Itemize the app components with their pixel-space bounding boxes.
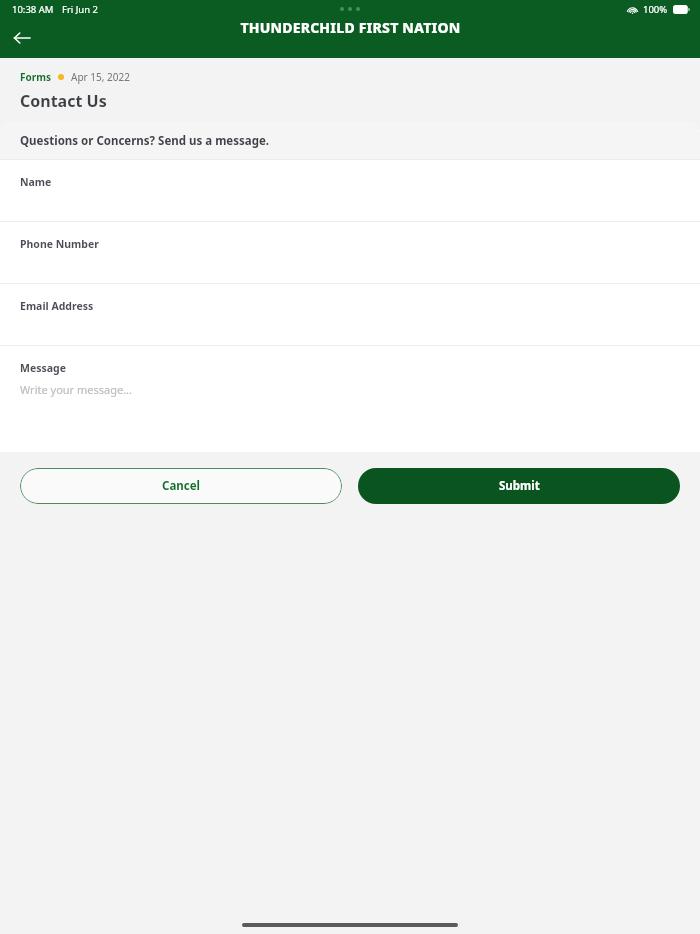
staticText: Forms bbox=[20, 70, 51, 84]
staticText: Email Address bbox=[20, 299, 94, 313]
staticText: 10:38 AM bbox=[12, 3, 54, 16]
button[interactable]: Submit bbox=[358, 468, 680, 504]
button[interactable]: Cancel bbox=[20, 468, 342, 504]
staticText: THUNDERCHILD FIRST NATION bbox=[240, 18, 461, 37]
staticText: 100% bbox=[643, 3, 668, 16]
staticText: Questions or Concerns? Send us a message… bbox=[20, 133, 270, 149]
button[interactable]: Name bbox=[0, 160, 700, 221]
staticText: Name bbox=[20, 175, 52, 189]
staticText: Fri Jun 2 bbox=[62, 3, 99, 16]
staticText: Contact Us bbox=[20, 90, 107, 112]
button[interactable]: Back bbox=[6, 22, 38, 54]
staticText: Apr 15, 2022 bbox=[71, 70, 130, 84]
staticText: Submit bbox=[499, 478, 540, 494]
staticText: Write your message... bbox=[20, 382, 133, 397]
button[interactable]: Email Address bbox=[0, 284, 700, 345]
staticText: Phone Number bbox=[20, 237, 99, 251]
staticText: Cancel bbox=[162, 478, 200, 494]
button[interactable]: Phone Number bbox=[0, 222, 700, 283]
staticText: Message bbox=[20, 361, 66, 375]
button[interactable]: Message bbox=[0, 346, 700, 452]
